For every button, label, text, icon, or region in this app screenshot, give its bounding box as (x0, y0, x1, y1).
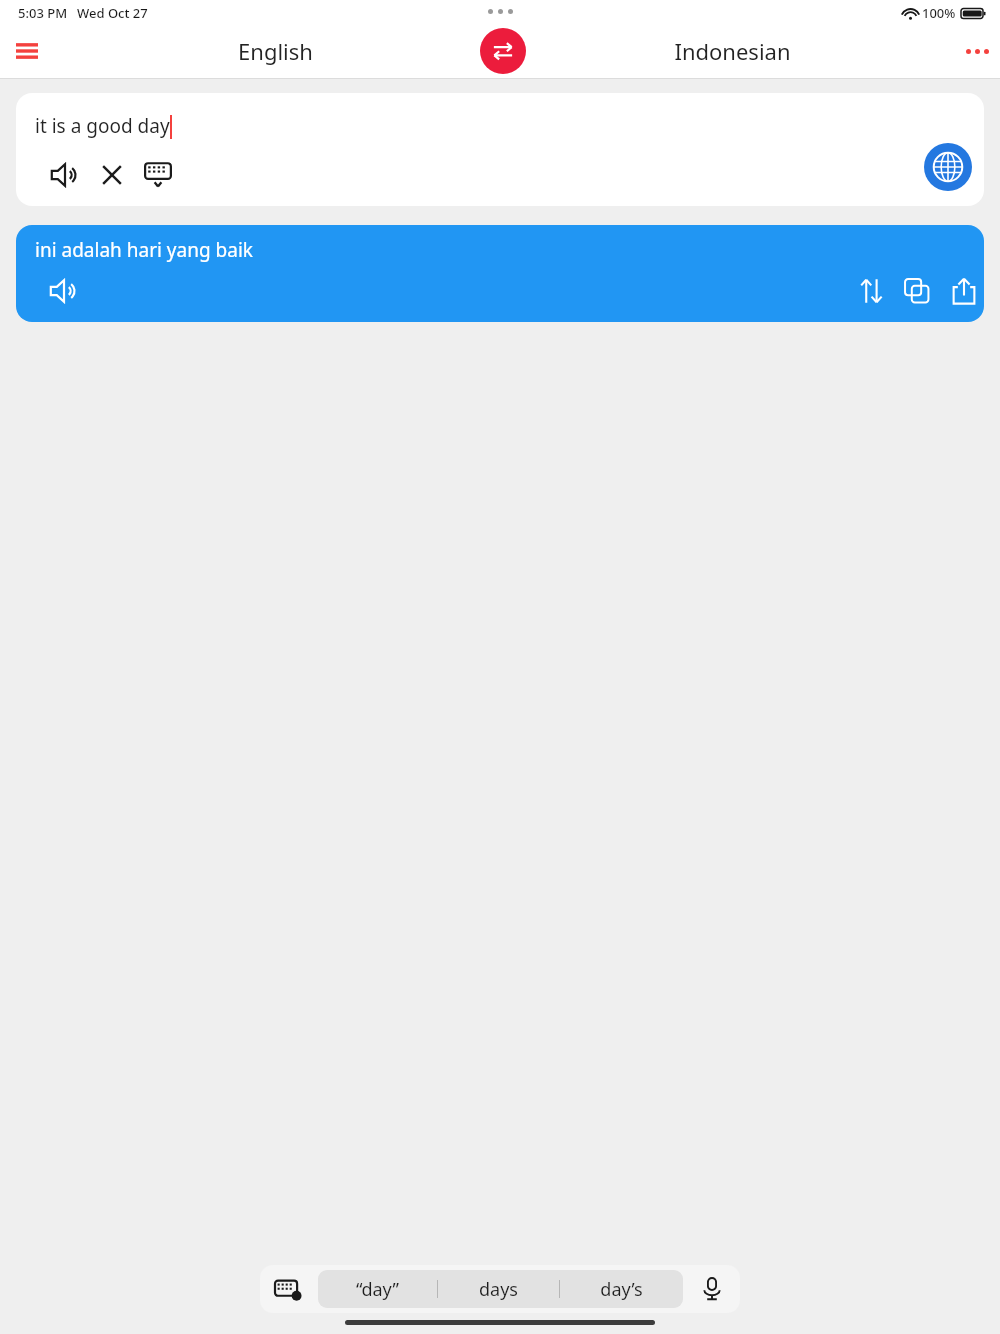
button[interactable]: “day” (318, 1270, 437, 1308)
button[interactable]: More options (955, 29, 999, 73)
button[interactable]: Share (942, 269, 984, 313)
staticText: Indonesian (674, 36, 791, 66)
staticText: day’s (600, 1277, 643, 1302)
staticText: Wed Oct 27 (77, 4, 148, 22)
button[interactable]: Swap translation (849, 269, 893, 313)
button[interactable]: Keyboard settings (266, 1267, 310, 1311)
button[interactable]: Language keyboard (924, 143, 972, 191)
button[interactable]: English (175, 28, 375, 74)
button[interactable]: Dictation (690, 1267, 734, 1311)
button[interactable]: Swap languages (480, 28, 526, 74)
button[interactable]: it is a good day (16, 93, 984, 206)
button[interactable]: Hide keyboard (136, 153, 180, 197)
staticText: it is a good day (35, 113, 170, 139)
button[interactable]: Indonesian (632, 28, 832, 74)
button[interactable]: days (438, 1270, 559, 1308)
staticText: 5:03 PM (18, 4, 68, 22)
button[interactable]: Listen (43, 153, 87, 197)
button[interactable]: ini adalah hari yang baik (16, 225, 984, 322)
staticText: “day” (356, 1277, 399, 1302)
button[interactable]: day’s (560, 1270, 682, 1308)
staticText: English (238, 36, 313, 66)
button[interactable]: Listen translation (42, 269, 86, 313)
staticText: days (479, 1277, 518, 1302)
button[interactable]: Copy (895, 269, 939, 313)
staticText: ini adalah hari yang baik (35, 237, 253, 263)
button[interactable]: Menu (5, 29, 49, 73)
button[interactable]: Clear text (90, 153, 134, 197)
staticText: 100% (922, 4, 956, 22)
